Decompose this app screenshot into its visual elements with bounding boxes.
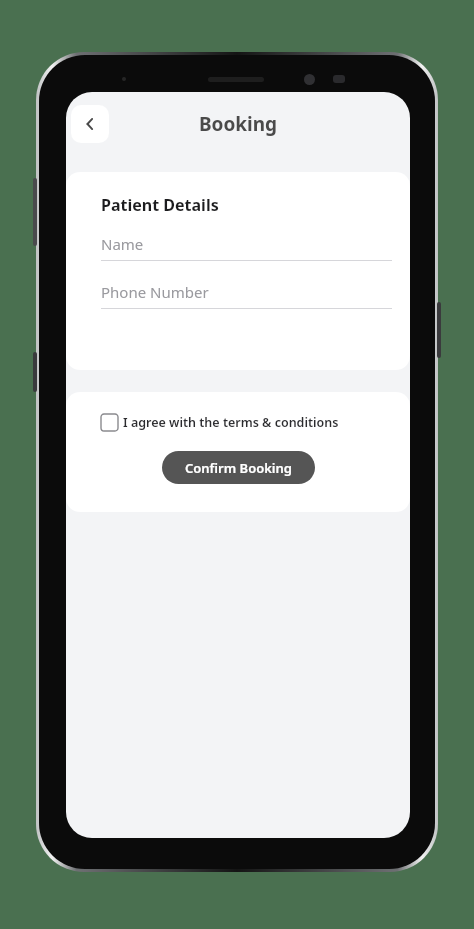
staticText: Patient Details (101, 194, 219, 216)
staticText: Booking (66, 111, 410, 137)
button[interactable]: I agree with the terms & conditions (101, 414, 339, 431)
staticText: Phone Number (101, 282, 209, 302)
button[interactable]: Confirm Booking (162, 451, 315, 484)
button[interactable]: Back (71, 105, 109, 143)
staticText: I agree with the terms & conditions (123, 414, 339, 431)
staticText: Confirm Booking (185, 459, 292, 477)
staticText: Name (101, 234, 144, 254)
